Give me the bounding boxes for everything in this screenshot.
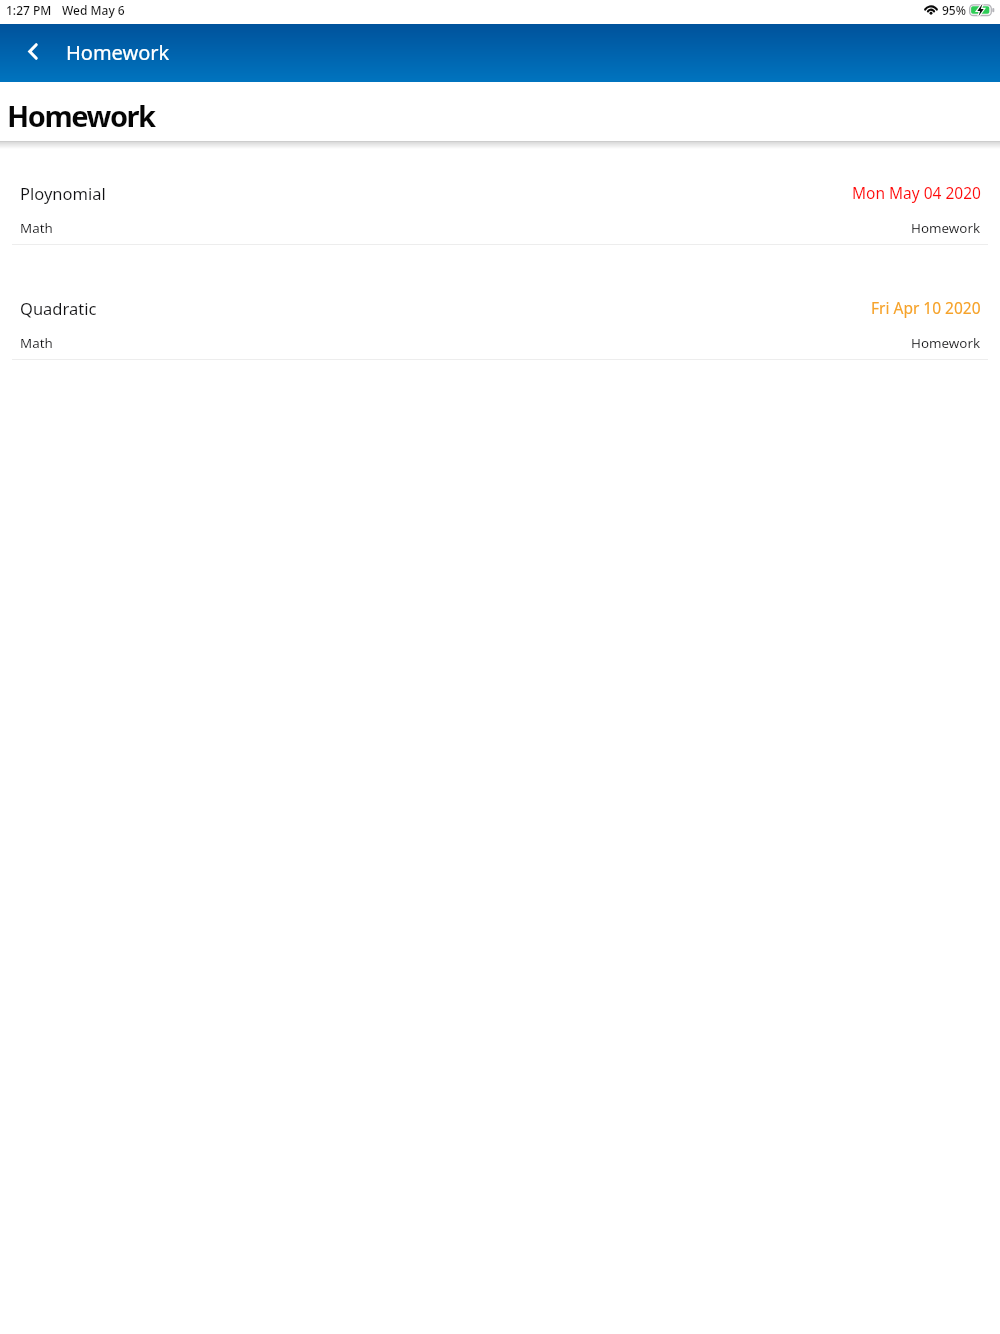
button[interactable]: Back bbox=[11, 29, 55, 73]
staticText: Homework bbox=[66, 39, 170, 66]
staticText: Homework bbox=[911, 219, 981, 237]
staticText: 95% bbox=[942, 2, 966, 18]
staticText: Homework bbox=[7, 96, 155, 135]
staticText: Mon May 04 2020 bbox=[852, 182, 981, 203]
button[interactable]: Ploynomial bbox=[0, 160, 1000, 275]
staticText: Fri Apr 10 2020 bbox=[871, 297, 981, 318]
staticText: 1:27 PM bbox=[6, 2, 52, 18]
staticText: Quadratic bbox=[20, 297, 97, 319]
staticText: Math bbox=[20, 334, 53, 352]
button[interactable]: Quadratic bbox=[0, 275, 1000, 390]
staticText: Wed May 6 bbox=[62, 2, 125, 18]
staticText: Homework bbox=[911, 334, 981, 352]
staticText: Ploynomial bbox=[20, 182, 106, 204]
staticText: Math bbox=[20, 219, 53, 237]
